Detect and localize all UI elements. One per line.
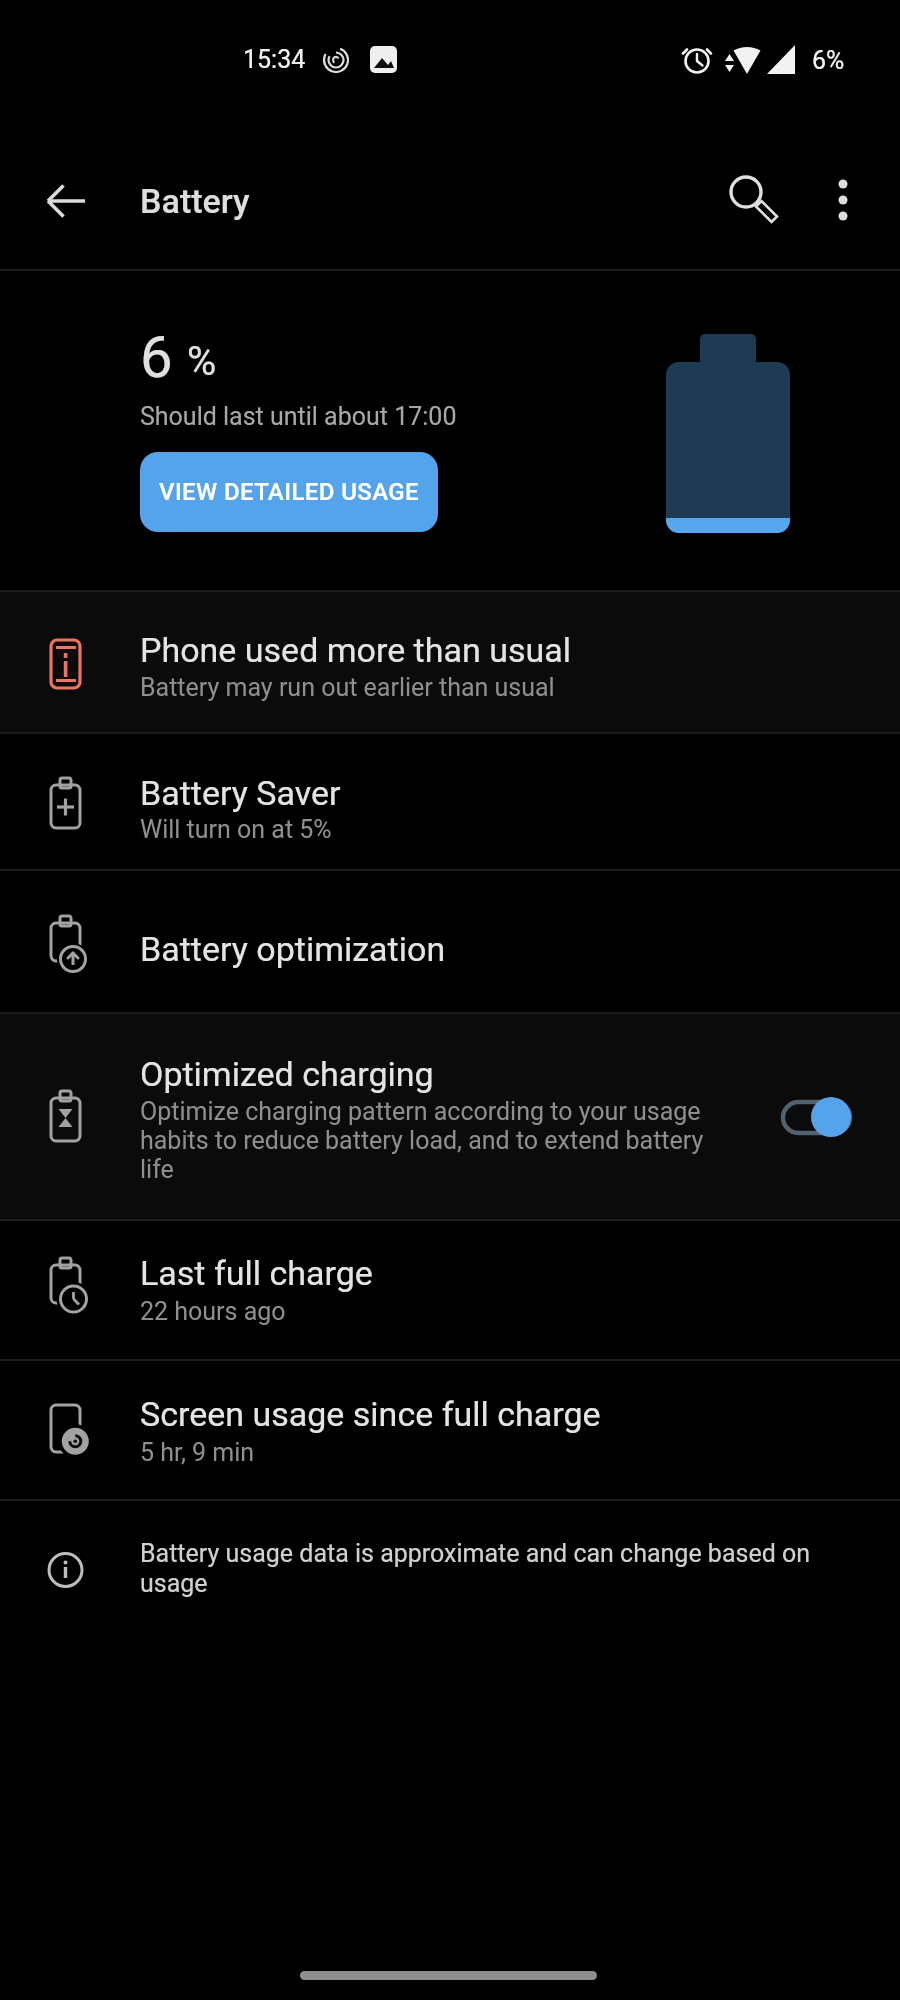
staticText: Battery Saver [140,773,341,813]
staticText: 22 hours ago [140,1297,286,1326]
staticText: Last full charge [140,1253,373,1293]
staticText: Battery [140,181,250,221]
staticText: 15:34 [243,45,306,74]
staticText: 5 hr, 9 min [140,1438,255,1467]
staticText: Battery may run out earlier than usual [140,673,555,702]
staticText: Will turn on at 5% [140,815,332,844]
button[interactable]: VIEW DETAILED USAGE [140,452,438,532]
button[interactable] [770,1090,870,1146]
staticText: Phone used more than usual [140,630,571,670]
staticText: Battery optimization [140,929,446,969]
staticText: % [187,338,217,385]
staticText: Optimize charging pattern according to y… [140,1097,704,1184]
button[interactable] [0,871,900,1012]
button[interactable] [0,1361,900,1499]
button[interactable] [0,1014,900,1219]
staticText: Optimized charging [140,1054,434,1094]
staticText: Screen usage since full charge [140,1394,601,1434]
button[interactable] [24,159,108,243]
button[interactable] [706,161,786,241]
button[interactable] [803,160,883,240]
staticText: 6 [140,323,173,391]
button[interactable] [0,592,900,732]
staticText: Battery usage data is approximate and ca… [140,1539,811,1598]
staticText: Should last until about 17:00 [140,402,457,431]
button[interactable] [0,1221,900,1359]
staticText: VIEW DETAILED USAGE [159,478,420,506]
button[interactable] [0,734,900,869]
staticText: 6% [812,46,845,75]
